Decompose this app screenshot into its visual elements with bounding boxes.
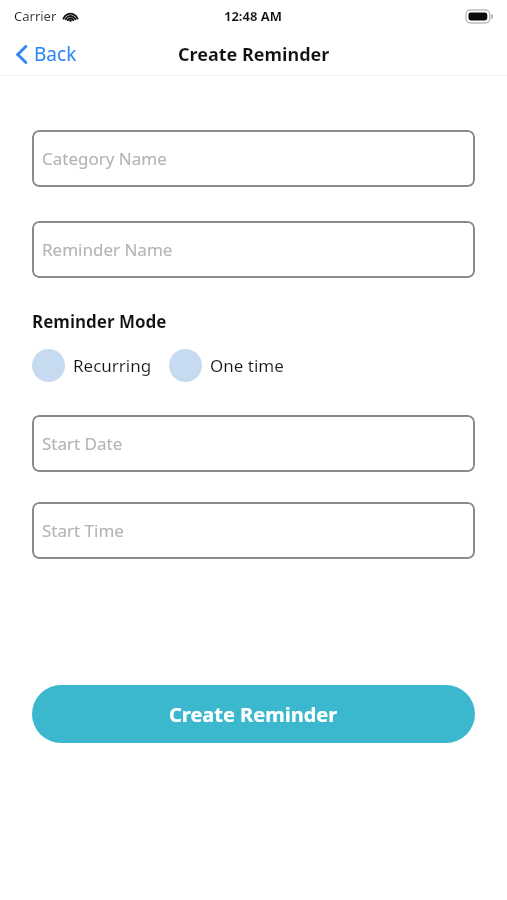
button[interactable]: Start Time <box>32 502 475 559</box>
staticText: Category Name <box>42 147 167 170</box>
staticText: Carrier <box>14 7 57 25</box>
staticText: 12:48 AM <box>224 7 283 25</box>
button[interactable]: One time <box>169 345 284 386</box>
button[interactable]: Recurring <box>32 345 152 386</box>
button[interactable]: Create Reminder <box>32 685 475 743</box>
staticText: Start Time <box>42 519 124 542</box>
staticText: Start Date <box>42 432 123 455</box>
staticText: One time <box>210 354 284 377</box>
button[interactable]: Category Name <box>32 130 475 187</box>
button[interactable]: Back <box>0 32 89 76</box>
staticText: Recurring <box>73 354 152 377</box>
staticText: Create Reminder <box>178 42 330 67</box>
button[interactable]: Start Date <box>32 415 475 472</box>
staticText: Reminder Name <box>42 238 173 261</box>
button[interactable]: Reminder Name <box>32 221 475 278</box>
staticText: Back <box>34 41 77 67</box>
staticText: Reminder Mode <box>32 310 167 333</box>
staticText: Create Reminder <box>169 701 338 728</box>
